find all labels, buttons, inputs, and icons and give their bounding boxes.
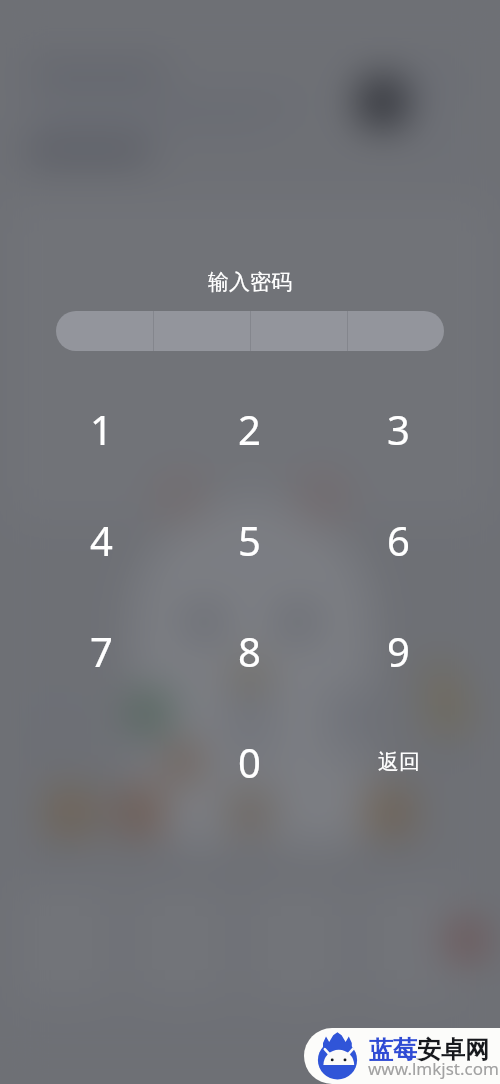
staticText: 安卓网 — [417, 1035, 489, 1065]
staticText: 4 — [90, 513, 113, 567]
other: 蓝莓安卓网 logo — [310, 1028, 366, 1084]
button[interactable]: Password input, 4 digits — [56, 311, 444, 351]
staticText: 0 — [238, 735, 261, 789]
staticText: 返回 — [378, 749, 420, 775]
button[interactable]: 9 — [324, 595, 473, 706]
button[interactable]: 1 — [27, 373, 175, 484]
button[interactable]: 0 — [175, 706, 324, 817]
staticText: 输入密码 — [208, 269, 292, 295]
staticText: 蓝莓 — [369, 1035, 417, 1065]
staticText: www.lmkjst.com — [368, 1057, 499, 1080]
button[interactable]: 返回 — [324, 706, 473, 817]
button[interactable]: 5 — [175, 484, 324, 595]
staticText: 3 — [387, 402, 410, 456]
button[interactable]: 7 — [27, 595, 175, 706]
button[interactable]: 2 — [175, 373, 324, 484]
button[interactable]: 蓝莓安卓网 logo — [304, 1028, 500, 1084]
button[interactable]: 3 — [324, 373, 473, 484]
staticText: 9 — [387, 624, 410, 678]
button[interactable]: 6 — [324, 484, 473, 595]
staticText: 7 — [90, 624, 113, 678]
staticText: 5 — [238, 513, 261, 567]
staticText: 2 — [238, 402, 261, 456]
staticText: 1 — [90, 402, 113, 456]
button[interactable]: 4 — [27, 484, 175, 595]
button[interactable]: 8 — [175, 595, 324, 706]
staticText: 6 — [387, 513, 410, 567]
staticText: 8 — [238, 624, 261, 678]
